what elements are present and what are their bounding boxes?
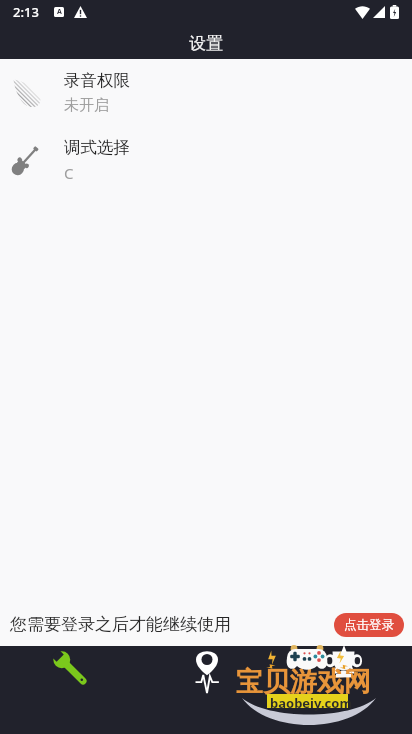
staticText: 设置 [0, 33, 412, 54]
button[interactable]: Metronome [275, 646, 412, 734]
staticText: 录音权限 [64, 70, 130, 91]
staticText: A [57, 7, 62, 17]
button[interactable]: 调式选择 [0, 126, 412, 193]
staticText: 点击登录 [344, 617, 394, 633]
staticText: C [64, 163, 74, 183]
button[interactable]: Tools [0, 646, 138, 734]
button[interactable]: 录音权限 [0, 59, 412, 126]
staticText: 调式选择 [64, 137, 130, 158]
staticText: baobeiy.com [270, 694, 353, 712]
staticText: 未开启 [64, 96, 109, 115]
button[interactable]: Tuner [138, 646, 275, 734]
button[interactable]: 点击登录 [334, 613, 404, 637]
staticText: 您需要登录之后才能继续使用 [10, 614, 231, 635]
staticText: 宝贝游戏网 [236, 665, 371, 699]
staticText: 2:13 [13, 3, 39, 21]
